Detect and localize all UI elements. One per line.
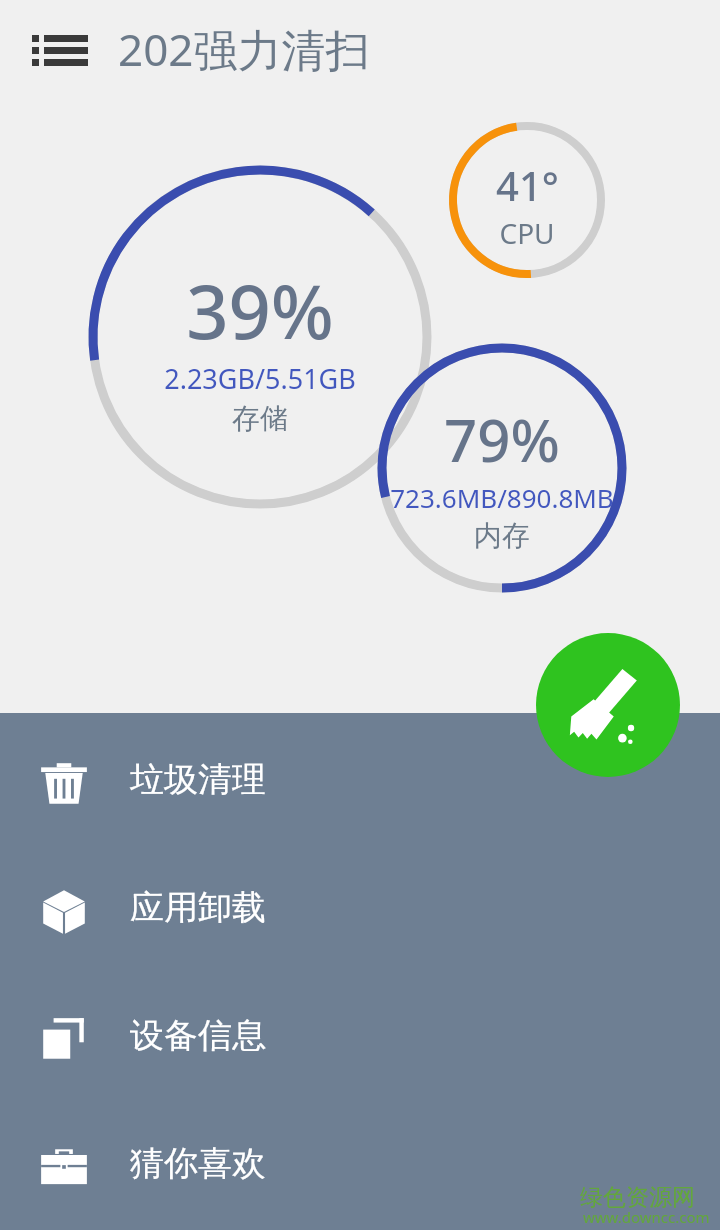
- staticText: 79%: [444, 400, 560, 479]
- staticText: CPU: [499, 214, 555, 252]
- staticText: 垃圾清理: [130, 758, 266, 801]
- staticText: www.downcc.com: [583, 1207, 710, 1227]
- button[interactable]: 设备信息: [0, 988, 720, 1088]
- staticText: 723.6MB/890.8MB: [390, 480, 614, 515]
- staticText: 设备信息: [130, 1014, 266, 1057]
- staticText: 绿色资源网: [580, 1183, 695, 1212]
- button[interactable]: 猜你喜欢: [0, 1116, 720, 1216]
- staticText: 2.23GB/5.51GB: [164, 360, 356, 397]
- staticText: 202强力清扫: [118, 19, 370, 79]
- staticText: 39%: [186, 260, 334, 361]
- button[interactable]: 41°: [443, 116, 611, 284]
- button[interactable]: 39%: [75, 152, 445, 522]
- button[interactable]: 79%: [372, 338, 632, 598]
- staticText: 41°: [496, 158, 559, 212]
- staticText: 猜你喜欢: [130, 1142, 266, 1185]
- button[interactable]: Clean: [536, 633, 680, 777]
- button[interactable]: Menu: [18, 20, 90, 80]
- button[interactable]: 垃圾清理: [0, 732, 720, 832]
- staticText: 存储: [232, 401, 288, 436]
- staticText: 内存: [474, 518, 530, 553]
- button[interactable]: 应用卸载: [0, 860, 720, 960]
- staticText: 应用卸载: [130, 886, 266, 929]
